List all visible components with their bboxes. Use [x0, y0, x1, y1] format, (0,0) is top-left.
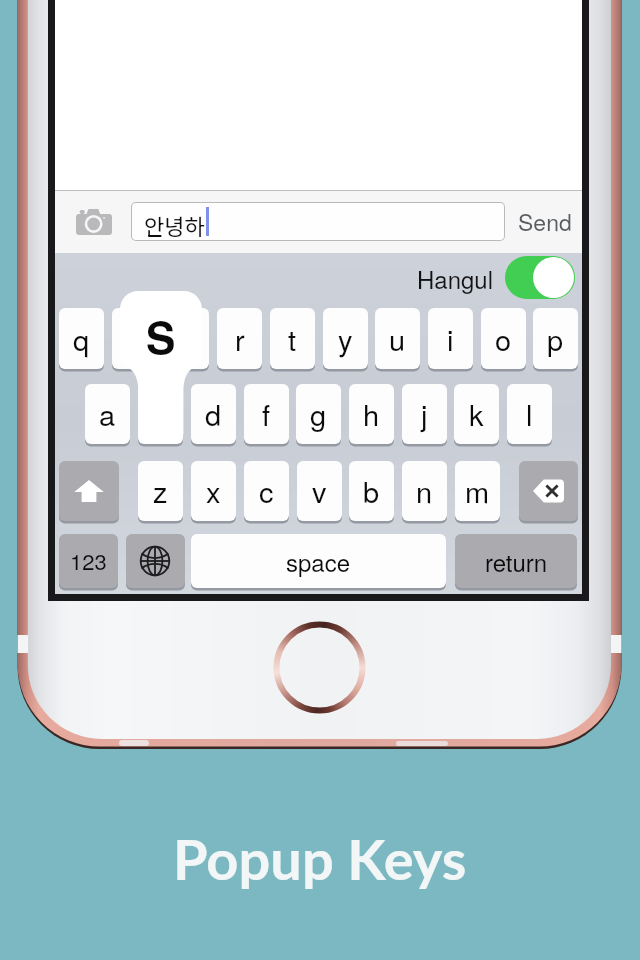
- staticText: v: [312, 470, 327, 512]
- button[interactable]: s: [138, 384, 183, 447]
- staticText: b: [363, 470, 380, 512]
- staticText: 안녕하: [144, 209, 205, 240]
- staticText: z: [153, 470, 168, 512]
- button[interactable]: Send: [513, 200, 577, 243]
- staticText: y: [338, 318, 353, 360]
- button[interactable]: x: [191, 461, 236, 524]
- button[interactable]: t: [270, 308, 315, 372]
- staticText: q: [73, 318, 90, 360]
- button[interactable]: Shift: [59, 461, 119, 524]
- staticText: c: [259, 470, 274, 512]
- staticText: Popup Keys: [173, 825, 467, 892]
- staticText: u: [389, 318, 406, 360]
- button[interactable]: j: [402, 384, 447, 447]
- staticText: a: [99, 393, 116, 435]
- staticText: S: [146, 304, 176, 367]
- staticText: i: [447, 318, 454, 360]
- staticText: Hangul: [417, 261, 494, 295]
- button[interactable]: Camera: [76, 209, 112, 235]
- staticText: Send: [518, 205, 572, 238]
- button[interactable]: g: [296, 384, 341, 447]
- button[interactable]: Switch keyboard: [126, 534, 185, 591]
- staticText: g: [310, 393, 327, 435]
- button[interactable]: c: [244, 461, 289, 524]
- button[interactable]: k: [454, 384, 499, 447]
- staticText: o: [495, 318, 512, 360]
- staticText: m: [465, 470, 490, 512]
- staticText: space: [286, 544, 351, 578]
- staticText: n: [416, 470, 433, 512]
- staticText: d: [205, 393, 222, 435]
- button[interactable]: n: [402, 461, 447, 524]
- button[interactable]: u: [375, 308, 420, 372]
- button[interactable]: b: [349, 461, 394, 524]
- button[interactable]: l: [507, 384, 552, 447]
- staticText: j: [421, 393, 428, 435]
- button[interactable]: 안녕하: [132, 203, 504, 240]
- button[interactable]: 123: [59, 534, 118, 591]
- button[interactable]: space: [191, 534, 446, 591]
- staticText: return: [485, 544, 548, 578]
- button[interactable]: return: [455, 534, 577, 591]
- button[interactable]: Hangul: [413, 255, 577, 300]
- staticText: h: [363, 393, 380, 435]
- button[interactable]: v: [297, 461, 342, 524]
- button[interactable]: m: [455, 461, 500, 524]
- button[interactable]: Backspace: [519, 461, 578, 524]
- button[interactable]: p: [533, 308, 578, 372]
- button[interactable]: w: [112, 308, 157, 372]
- staticText: x: [206, 470, 221, 512]
- button[interactable]: e: [164, 308, 209, 372]
- staticText: f: [262, 393, 271, 435]
- staticText: p: [547, 318, 564, 360]
- staticText: t: [288, 318, 297, 360]
- button[interactable]: r: [217, 308, 262, 372]
- button[interactable]: z: [138, 461, 183, 524]
- button[interactable]: o: [481, 308, 526, 372]
- button[interactable]: y: [323, 308, 368, 372]
- button[interactable]: f: [244, 384, 289, 447]
- button[interactable]: d: [191, 384, 236, 447]
- staticText: r: [235, 318, 245, 360]
- staticText: l: [526, 393, 533, 435]
- button[interactable]: a: [85, 384, 130, 447]
- staticText: k: [469, 393, 484, 435]
- staticText: 123: [70, 545, 107, 577]
- button[interactable]: q: [59, 308, 104, 372]
- button[interactable]: i: [428, 308, 473, 372]
- button[interactable]: h: [349, 384, 394, 447]
